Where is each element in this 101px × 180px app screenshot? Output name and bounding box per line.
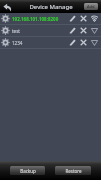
staticText: Backup	[20, 168, 36, 174]
staticText: test	[12, 28, 67, 34]
button[interactable]: Delete	[78, 25, 89, 36]
button[interactable]: Delete	[78, 37, 89, 48]
button[interactable]: Backup	[10, 166, 45, 175]
staticText: 192.168.101.108:8200	[12, 16, 67, 22]
button[interactable]: Edit	[67, 13, 78, 24]
staticText: Restore	[65, 168, 82, 174]
button[interactable]: Edit	[67, 25, 78, 36]
button[interactable]: 1234	[0, 37, 101, 48]
button[interactable]: Add	[84, 3, 98, 10]
button[interactable]: Restore	[55, 166, 91, 175]
button[interactable]: Connect	[89, 13, 100, 24]
staticText: Device Manage	[29, 3, 73, 11]
button[interactable]: Delete	[78, 13, 89, 24]
staticText: Add	[87, 4, 95, 9]
button[interactable]: Back	[1, 1, 13, 13]
button[interactable]: Connect	[89, 25, 100, 36]
staticText: 1234	[12, 40, 67, 46]
button[interactable]: Connect	[89, 37, 100, 48]
button[interactable]: test	[0, 25, 101, 36]
button[interactable]: 192.168.101.108:8200	[0, 13, 101, 24]
button[interactable]: Edit	[67, 37, 78, 48]
